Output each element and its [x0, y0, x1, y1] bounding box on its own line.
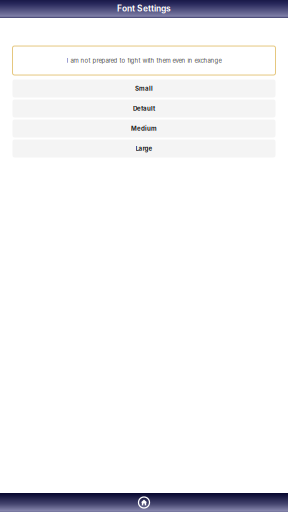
button[interactable]: Large [12, 139, 275, 157]
staticText: Medium [131, 125, 157, 132]
staticText: Font Settings [117, 3, 171, 14]
staticText: Default [133, 105, 155, 112]
button[interactable]: Home [136, 494, 152, 510]
button[interactable]: Medium [12, 119, 275, 137]
staticText: Small [135, 85, 153, 92]
button[interactable]: Default [12, 99, 275, 117]
staticText: Large [135, 145, 152, 152]
staticText: I am not prepared to fight with them eve… [66, 57, 221, 64]
button[interactable]: Small [12, 79, 275, 97]
